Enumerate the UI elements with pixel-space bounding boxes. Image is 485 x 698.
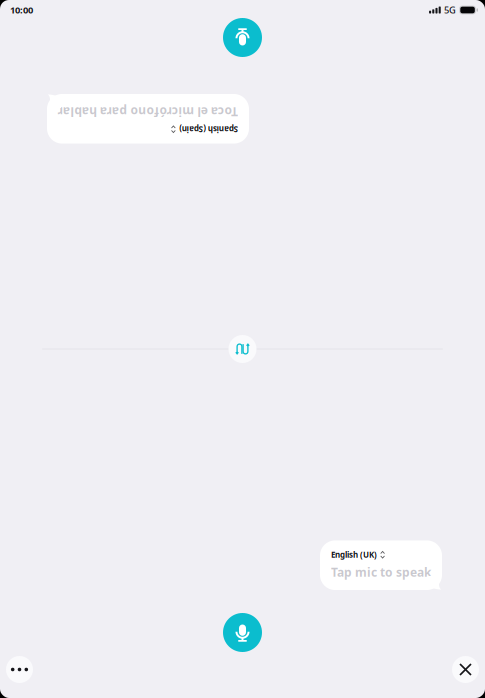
- button[interactable]: Microphone: [223, 613, 262, 652]
- button[interactable]: More: [6, 656, 33, 683]
- staticText: Tap mic to speak: [331, 564, 431, 580]
- staticText: English (UK): [331, 549, 377, 560]
- staticText: 5G: [444, 4, 456, 16]
- button[interactable]: Swap languages: [228, 335, 256, 363]
- staticText: 10:00: [10, 4, 33, 16]
- button[interactable]: Close: [452, 656, 479, 683]
